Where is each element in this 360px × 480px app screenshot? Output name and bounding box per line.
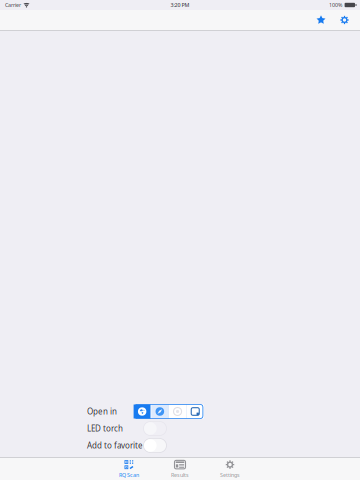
button[interactable]: Settings bbox=[333, 10, 356, 30]
button[interactable]: Favorites bbox=[309, 10, 333, 30]
staticText: Carrier bbox=[5, 1, 21, 9]
staticText: 3:20 PM bbox=[170, 1, 189, 9]
staticText: LED torch bbox=[87, 423, 123, 434]
staticText: 100% bbox=[329, 1, 342, 9]
button[interactable]: Open in Safari bbox=[151, 404, 168, 418]
button[interactable]: Open in Chrome bbox=[169, 404, 186, 418]
staticText: RQ Scan bbox=[119, 471, 139, 478]
button[interactable]: Results bbox=[155, 457, 205, 480]
button[interactable]: Settings bbox=[205, 457, 255, 480]
button[interactable]: LED torch bbox=[143, 421, 166, 435]
button[interactable]: Add to favorite bbox=[143, 438, 166, 452]
button[interactable]: RQ Scan bbox=[104, 457, 154, 480]
staticText: Open in bbox=[87, 406, 117, 417]
button[interactable]: Open in built-in browser bbox=[134, 404, 151, 418]
staticText: Settings bbox=[220, 471, 240, 478]
staticText: Add to favorite bbox=[87, 440, 143, 451]
staticText: Results bbox=[171, 471, 189, 478]
button[interactable]: Copy link bbox=[187, 404, 204, 418]
